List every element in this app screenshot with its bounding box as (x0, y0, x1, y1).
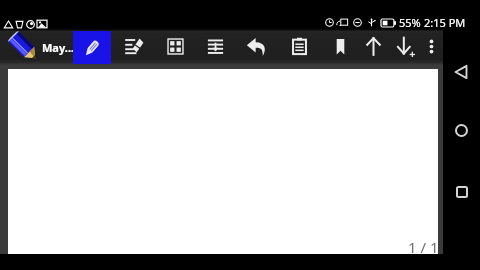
button[interactable]: Home (448, 117, 475, 144)
staticText: May... (42, 40, 74, 55)
staticText: 2:15 PM (424, 15, 466, 30)
button[interactable]: Clipboard (282, 31, 316, 61)
button[interactable]: Eraser (117, 31, 151, 61)
button[interactable]: Bookmark (323, 31, 357, 61)
button[interactable]: Undo (239, 31, 273, 61)
button[interactable]: Text lines (198, 31, 232, 61)
button[interactable]: Back (448, 58, 475, 85)
button[interactable]: Share (356, 31, 390, 61)
button[interactable]: May... (6, 29, 74, 65)
button[interactable]: More options (414, 31, 448, 61)
button[interactable]: Add page (388, 31, 422, 61)
button[interactable]: Recent apps (448, 178, 475, 205)
button[interactable]: Pen (73, 31, 111, 64)
staticText: 55% (399, 15, 421, 30)
button[interactable]: Grid (158, 31, 192, 61)
staticText: 1 / 1 (408, 237, 439, 257)
